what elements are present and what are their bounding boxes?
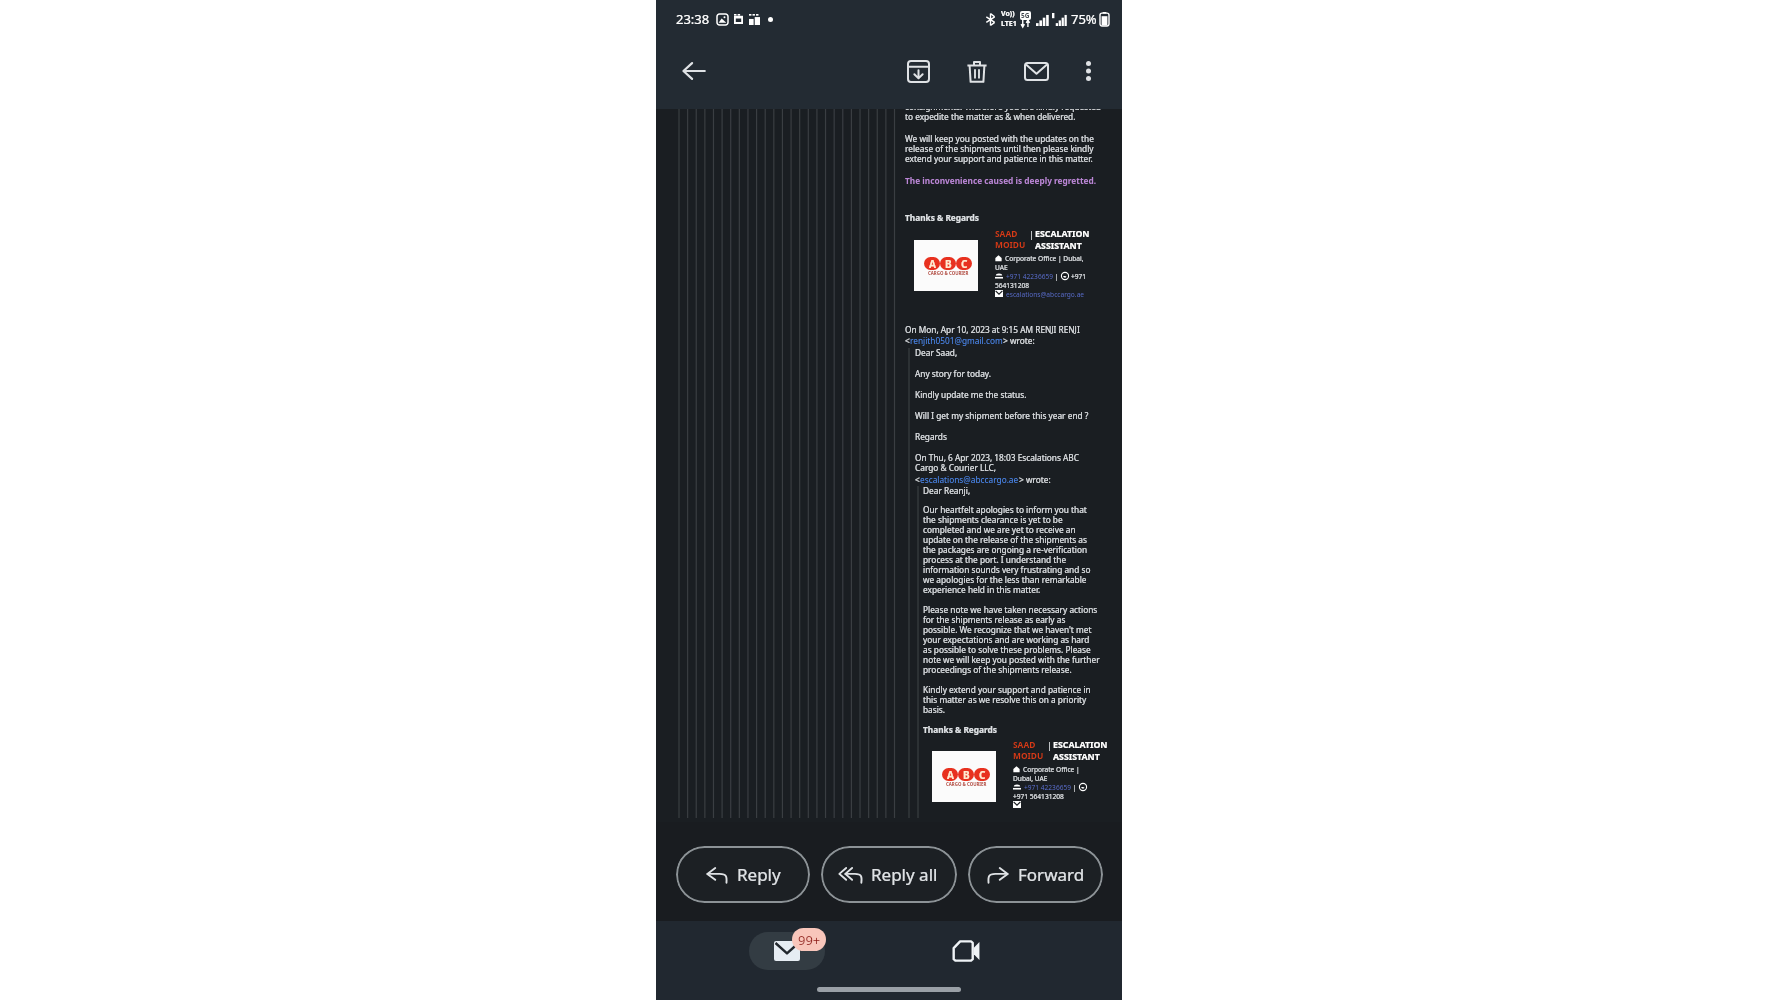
staticText: ASSISTANT	[1035, 240, 1082, 252]
staticText: Dubai, UAE	[1013, 774, 1048, 783]
staticText: SAAD	[1013, 739, 1036, 750]
staticText: UAE	[995, 263, 1008, 272]
button[interactable]: Forward	[968, 846, 1103, 903]
staticText: Any story for today.	[915, 368, 991, 379]
staticText: Corporate Office |	[1023, 765, 1080, 774]
staticText: Forward	[1018, 863, 1085, 886]
staticText: B	[963, 768, 970, 781]
staticText: +971	[1071, 272, 1087, 281]
staticText: Dear Reanji,	[923, 485, 971, 496]
staticText: 564131208	[995, 281, 1029, 290]
staticText: On Thu, 6 Apr 2023, 18:03 Escalations AB…	[915, 452, 1080, 474]
staticText: C	[961, 257, 968, 270]
staticText: ASSISTANT	[1053, 751, 1100, 763]
staticText: Please note we have taken necessary acti…	[923, 604, 1100, 676]
staticText: Will I get my shipment before this year …	[915, 410, 1089, 421]
staticText: 23:38	[676, 10, 710, 28]
staticText: Thanks & Regards	[923, 724, 997, 735]
staticText: |	[1071, 783, 1079, 792]
staticText: A	[929, 257, 936, 270]
staticText: escalations@abccargo.ae	[920, 474, 1019, 485]
staticText: Reply	[737, 863, 781, 886]
button[interactable]: Mark as unread	[1016, 51, 1056, 91]
staticText: |	[1029, 228, 1034, 240]
staticText: The inconvenience caused is deeply regre…	[905, 175, 1097, 186]
staticText: CARGO & COURIER	[946, 781, 987, 787]
staticText: Corporate Office | Dubai,	[1005, 254, 1084, 263]
staticText: +971 564131208	[1013, 792, 1064, 801]
staticText: > wrote:	[1003, 335, 1035, 346]
staticText: <	[905, 335, 910, 346]
staticText: Dear Saad,	[915, 347, 958, 358]
staticText: On Mon, Apr 10, 2023 at 9:15 AM RENJI RE…	[905, 324, 1080, 335]
staticText: 75%	[1071, 10, 1097, 28]
staticText: SAAD	[995, 228, 1018, 239]
staticText: |	[1053, 272, 1061, 281]
staticText: Kindly update me the status.	[915, 389, 1027, 400]
staticText: C	[979, 768, 986, 781]
staticText: +971 42236659	[1006, 272, 1053, 281]
button[interactable]: Archive	[898, 51, 938, 91]
staticText: Regards	[915, 431, 947, 442]
staticText: Vo))	[1001, 9, 1015, 19]
button[interactable]: Back	[674, 51, 714, 91]
staticText: +971 42236659	[1024, 783, 1071, 792]
button[interactable]: More options	[1070, 53, 1106, 89]
button[interactable]: Delete	[957, 51, 997, 91]
staticText: 5G	[1021, 11, 1030, 20]
staticText: 99+	[798, 931, 821, 949]
staticText: renjith0501@gmail.com	[910, 335, 1003, 346]
button[interactable]: Reply all	[821, 846, 957, 903]
staticText: <	[915, 474, 920, 485]
staticText: ESCALATION	[1035, 228, 1090, 240]
staticText: MOIDU	[995, 239, 1026, 250]
staticText: escalations@abccargo.ae	[1006, 290, 1085, 299]
staticText: A	[947, 768, 954, 781]
staticText: MOIDU	[1013, 750, 1044, 761]
staticText: ESCALATION	[1053, 739, 1108, 751]
staticText: Our heartfelt apologies to inform you th…	[923, 504, 1100, 596]
staticText: We will keep you posted with the updates…	[905, 133, 1106, 165]
staticText: CARGO & COURIER	[928, 270, 969, 276]
button[interactable]: Meet	[928, 932, 1004, 970]
staticText: Reply all	[871, 863, 938, 886]
staticText: consignments. Therefore you are kindly r…	[905, 109, 1101, 123]
staticText: > wrote:	[1019, 474, 1051, 485]
button[interactable]: Mail	[749, 932, 825, 970]
staticText: Kindly extend your support and patience …	[923, 684, 1100, 716]
staticText: Thanks & Regards	[905, 212, 979, 223]
staticText: |	[1047, 739, 1052, 751]
staticText: LTE1	[1001, 19, 1017, 29]
button[interactable]: Reply	[676, 846, 810, 903]
staticText: B	[945, 257, 952, 270]
